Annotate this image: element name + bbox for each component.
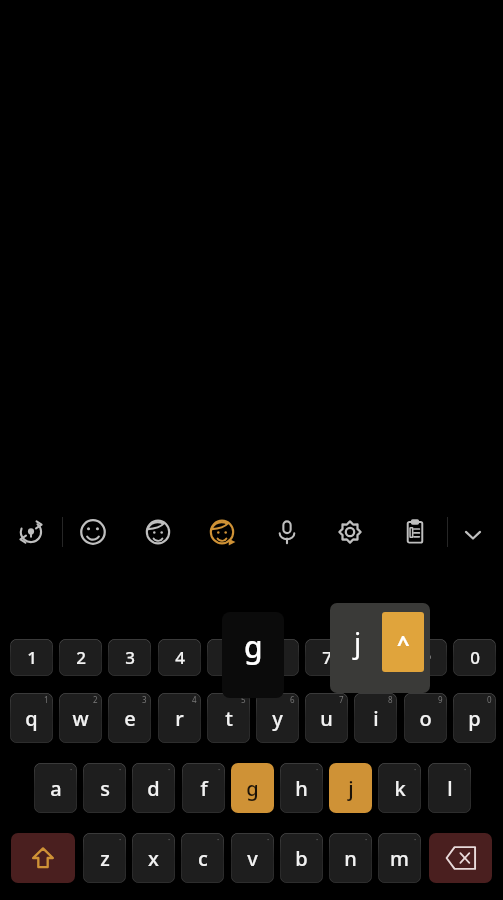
staticText: l [447, 775, 453, 802]
button[interactable]: Shift [11, 833, 75, 883]
staticText: v [247, 845, 258, 872]
button[interactable]: 4 [158, 639, 201, 676]
button[interactable]: 9 [404, 639, 447, 676]
staticText: b [295, 845, 308, 872]
button[interactable]: c [181, 833, 224, 883]
staticText: 8 [388, 694, 393, 705]
staticText: · [316, 834, 319, 845]
staticText: ^ [397, 627, 410, 657]
staticText: h [295, 775, 308, 802]
staticText: 2 [93, 694, 98, 705]
staticText: 9 [421, 646, 431, 669]
button[interactable]: o [404, 693, 447, 743]
staticText: · [414, 834, 417, 845]
staticText: e [124, 705, 136, 732]
button[interactable]: Keyboard tool [136, 510, 180, 554]
staticText: o [419, 705, 432, 732]
staticText: 3 [142, 694, 147, 705]
staticText: c [198, 845, 208, 872]
button[interactable]: v [231, 833, 274, 883]
button[interactable]: 7 [305, 639, 348, 676]
button[interactable]: 3 [108, 639, 151, 676]
button[interactable]: t [207, 693, 250, 743]
staticText: 7 [322, 646, 332, 669]
staticText: · [464, 764, 467, 775]
staticText: j [348, 775, 354, 802]
button[interactable]: 0 [453, 639, 496, 676]
staticText: u [320, 705, 333, 732]
button[interactable]: Keyboard tool [328, 510, 372, 554]
staticText: 1 [44, 694, 49, 705]
button[interactable]: y [256, 693, 299, 743]
button[interactable]: i [354, 693, 397, 743]
button[interactable]: k [378, 763, 421, 813]
button[interactable]: 2 [59, 639, 102, 676]
button[interactable]: e [108, 693, 151, 743]
staticText: r [175, 705, 184, 732]
button[interactable]: g [231, 763, 274, 813]
staticText: 4 [192, 694, 197, 705]
staticText: 5 [241, 694, 246, 705]
button[interactable]: m [378, 833, 421, 883]
staticText: j [354, 623, 362, 661]
button[interactable]: r [158, 693, 201, 743]
staticText: · [119, 764, 122, 775]
staticText: · [414, 764, 417, 775]
button[interactable]: Keyboard tool [200, 510, 244, 554]
button[interactable]: 6 [256, 639, 299, 676]
button[interactable]: Keyboard tool [9, 510, 53, 554]
button[interactable]: a [34, 763, 77, 813]
staticText: n [344, 845, 357, 872]
staticText: p [468, 705, 481, 732]
staticText: · [316, 764, 319, 775]
button[interactable]: 8 [354, 639, 397, 676]
staticText: · [267, 834, 270, 845]
staticText: · [168, 834, 171, 845]
button[interactable]: f [182, 763, 225, 813]
staticText: · [218, 764, 221, 775]
staticText: 0 [470, 646, 480, 669]
staticText: y [272, 705, 283, 732]
button[interactable]: j [329, 763, 372, 813]
button[interactable]: d [132, 763, 175, 813]
staticText: · [365, 834, 368, 845]
staticText: · [70, 764, 73, 775]
staticText: 1 [27, 646, 37, 669]
staticText: 6 [290, 694, 295, 705]
staticText: q [25, 705, 38, 732]
staticText: t [225, 705, 233, 732]
staticText: m [390, 845, 409, 872]
staticText: i [373, 705, 379, 732]
button[interactable]: s [83, 763, 126, 813]
button[interactable]: l [428, 763, 471, 813]
button[interactable]: x [132, 833, 175, 883]
staticText: g [246, 775, 259, 802]
staticText: f [200, 775, 208, 802]
staticText: · [168, 764, 171, 775]
button[interactable]: b [280, 833, 323, 883]
button[interactable]: p [453, 693, 496, 743]
staticText: x [148, 845, 159, 872]
staticText: · [217, 834, 220, 845]
staticText: s [100, 775, 110, 802]
button[interactable]: q [10, 693, 53, 743]
button[interactable]: Keyboard tool [71, 510, 115, 554]
staticText: 0 [487, 694, 492, 705]
button[interactable]: h [280, 763, 323, 813]
button[interactable]: Keyboard tool [393, 510, 437, 554]
button[interactable]: n [329, 833, 372, 883]
button[interactable]: 1 [10, 639, 53, 676]
button[interactable]: 5 [207, 639, 250, 676]
button[interactable]: Backspace [429, 833, 492, 883]
button[interactable]: w [59, 693, 102, 743]
staticText: 4 [175, 646, 185, 669]
button[interactable]: Keyboard tool [265, 510, 309, 554]
button[interactable]: u [305, 693, 348, 743]
button[interactable]: z [83, 833, 126, 883]
staticText: d [147, 775, 160, 802]
staticText: k [394, 775, 406, 802]
button[interactable]: Collapse keyboard [455, 517, 491, 553]
